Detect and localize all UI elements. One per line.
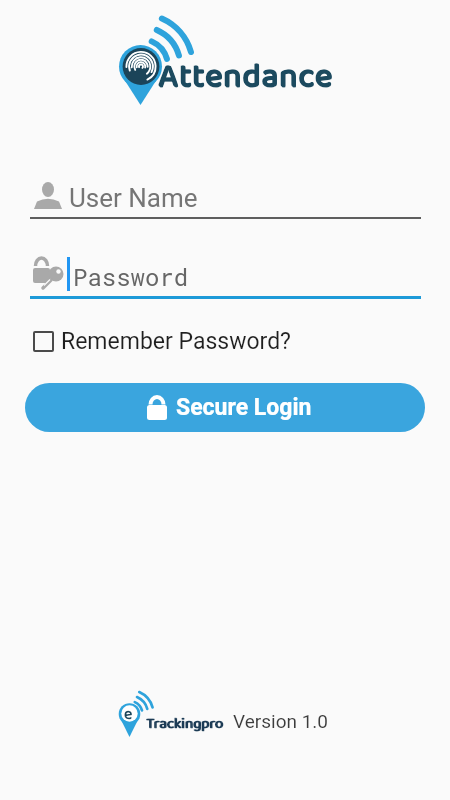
staticText: Password	[73, 261, 189, 293]
staticText: Attendance	[158, 50, 333, 103]
button[interactable]: Password	[30, 255, 421, 299]
staticText: Trackingpro	[147, 712, 224, 736]
staticText: User Name	[69, 183, 198, 213]
button[interactable]: Remember Password?	[28, 325, 291, 357]
staticText: Version 1.0	[233, 710, 329, 732]
staticText: Remember Password?	[61, 328, 291, 355]
staticText: e	[124, 702, 133, 728]
staticText: Attendance	[159, 50, 334, 103]
staticText: Secure Login	[176, 394, 312, 421]
button[interactable]: User Name	[30, 178, 421, 219]
staticText: Attendance	[159, 51, 334, 104]
button[interactable]: Secure Login	[25, 383, 425, 432]
staticText: Trackingpro	[146, 712, 223, 736]
